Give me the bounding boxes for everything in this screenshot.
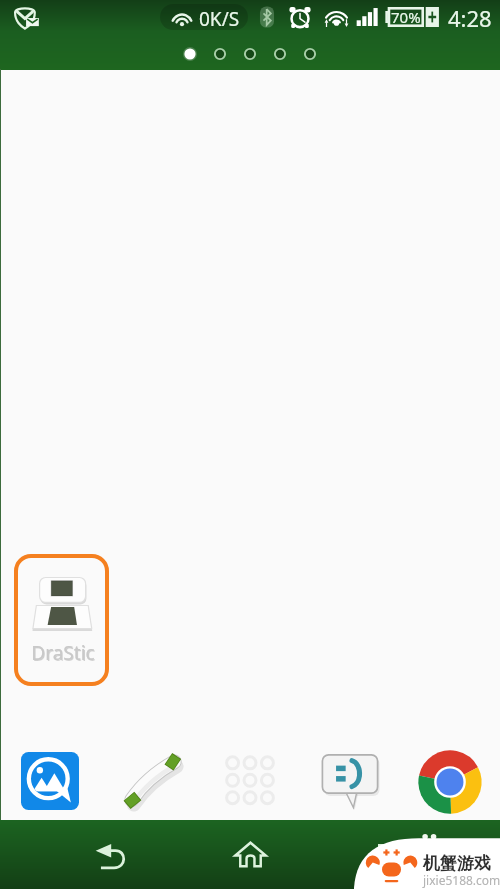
staticText: jixie5188.com bbox=[423, 872, 500, 888]
staticText: 70% bbox=[391, 7, 421, 27]
button[interactable]: Phone bbox=[122, 750, 184, 812]
button[interactable]: Chrome bbox=[417, 749, 483, 815]
staticText: 机蟹游戏 bbox=[423, 853, 491, 874]
staticText: 0K/S bbox=[199, 6, 240, 30]
button[interactable]: Messaging bbox=[319, 752, 381, 810]
staticText: 4:28 bbox=[448, 3, 492, 33]
button[interactable]: Recent apps bbox=[350, 820, 428, 889]
button[interactable]: DraStic bbox=[14, 554, 109, 686]
button[interactable]: Back bbox=[72, 820, 150, 889]
staticText: DraStic bbox=[32, 641, 96, 667]
staticText: DraStic bbox=[31, 640, 95, 666]
button[interactable]: QuickPic bbox=[21, 752, 79, 810]
button[interactable]: Home bbox=[211, 820, 289, 889]
button[interactable]: All apps bbox=[224, 754, 276, 806]
